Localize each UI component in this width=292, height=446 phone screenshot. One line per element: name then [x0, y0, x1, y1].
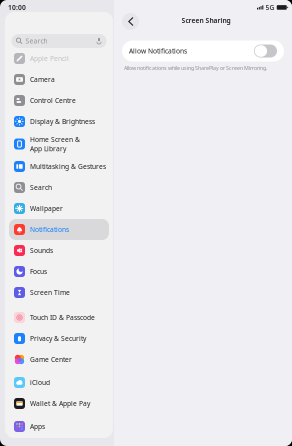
staticText: Home Screen & [30, 135, 80, 144]
staticText: Display & Brightness [30, 117, 95, 126]
staticText: iCloud [30, 378, 50, 387]
staticText: Game Center [30, 355, 72, 364]
button[interactable]: Search [9, 177, 109, 198]
button[interactable]: Allow Notifications [122, 40, 284, 61]
button[interactable]: Home Screen & [9, 132, 109, 156]
button[interactable]: Camera [9, 69, 109, 90]
staticText: Wallet & Apple Pay [30, 399, 90, 408]
button[interactable]: Apps [9, 416, 109, 437]
button[interactable]: Focus [9, 261, 109, 282]
button[interactable]: Notifications [9, 219, 109, 240]
button[interactable]: Multitasking & Gestures [9, 156, 109, 177]
button[interactable]: Sounds [9, 240, 109, 261]
button[interactable]: Screen Time [9, 282, 109, 303]
button[interactable]: Display & Brightness [9, 111, 109, 132]
staticText: Search [25, 37, 47, 45]
staticText: Focus [30, 267, 47, 276]
button[interactable]: Back [122, 13, 139, 30]
staticText: Allow Notifications [129, 47, 187, 55]
button[interactable]: Game Center [9, 349, 109, 370]
staticText: Multitasking & Gestures [30, 162, 106, 171]
staticText: Wallpaper [30, 204, 63, 213]
staticText: Control Centre [30, 96, 76, 105]
button[interactable]: Control Centre [9, 90, 109, 111]
staticText: App Library [30, 144, 66, 153]
staticText: Search [30, 183, 52, 192]
staticText: 5G [266, 3, 275, 12]
staticText: Allow notifications while using SharePla… [124, 64, 267, 72]
staticText: Screen Sharing [181, 16, 230, 25]
staticText: Camera [30, 75, 55, 84]
button[interactable]: Wallet & Apple Pay [9, 393, 109, 414]
button[interactable]: iCloud [9, 372, 109, 393]
button[interactable]: Apple Pencil [9, 48, 109, 69]
staticText: Screen Time [30, 288, 70, 297]
staticText: Apple Pencil [30, 54, 69, 63]
button[interactable]: Privacy & Security [9, 328, 109, 349]
staticText: Apps [30, 422, 45, 431]
staticText: Sounds [30, 246, 53, 255]
staticText: Privacy & Security [30, 334, 86, 343]
staticText: Notifications [30, 225, 69, 234]
staticText: 10:00 [8, 3, 26, 12]
staticText: Touch ID & Passcode [30, 313, 95, 322]
button[interactable]: Touch ID & Passcode [9, 307, 109, 328]
button[interactable]: Wallpaper [9, 198, 109, 219]
